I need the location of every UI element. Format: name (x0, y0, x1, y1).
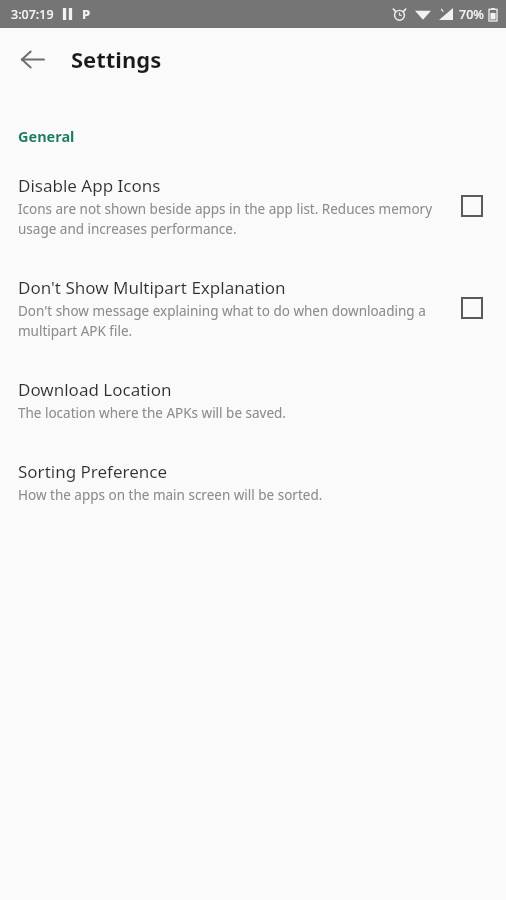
button[interactable]: Sorting Preference (0, 458, 506, 506)
button[interactable]: Don't Show Multipart Explanation (0, 274, 506, 342)
staticText: Don't show message explaining what to do… (18, 302, 438, 340)
button[interactable]: Toggle Disable App Icons (452, 186, 492, 226)
staticText: 3:07:19 (11, 6, 54, 23)
staticText: 70% (459, 6, 484, 23)
staticText: Sorting Preference (18, 460, 168, 483)
staticText: Disable App Icons (18, 174, 161, 197)
staticText: Don't Show Multipart Explanation (18, 276, 286, 299)
button[interactable]: Toggle Don't Show Multipart Explanation (452, 288, 492, 328)
staticText: How the apps on the main screen will be … (18, 486, 323, 504)
staticText: The location where the APKs will be save… (18, 404, 286, 422)
staticText: Icons are not shown beside apps in the a… (18, 200, 438, 238)
button[interactable]: Disable App Icons (0, 172, 506, 240)
staticText: General (18, 126, 75, 146)
staticText: P (82, 5, 91, 23)
button[interactable]: Back (10, 37, 54, 81)
staticText: Download Location (18, 378, 172, 401)
button[interactable]: Download Location (0, 376, 506, 424)
staticText: Settings (71, 44, 162, 74)
